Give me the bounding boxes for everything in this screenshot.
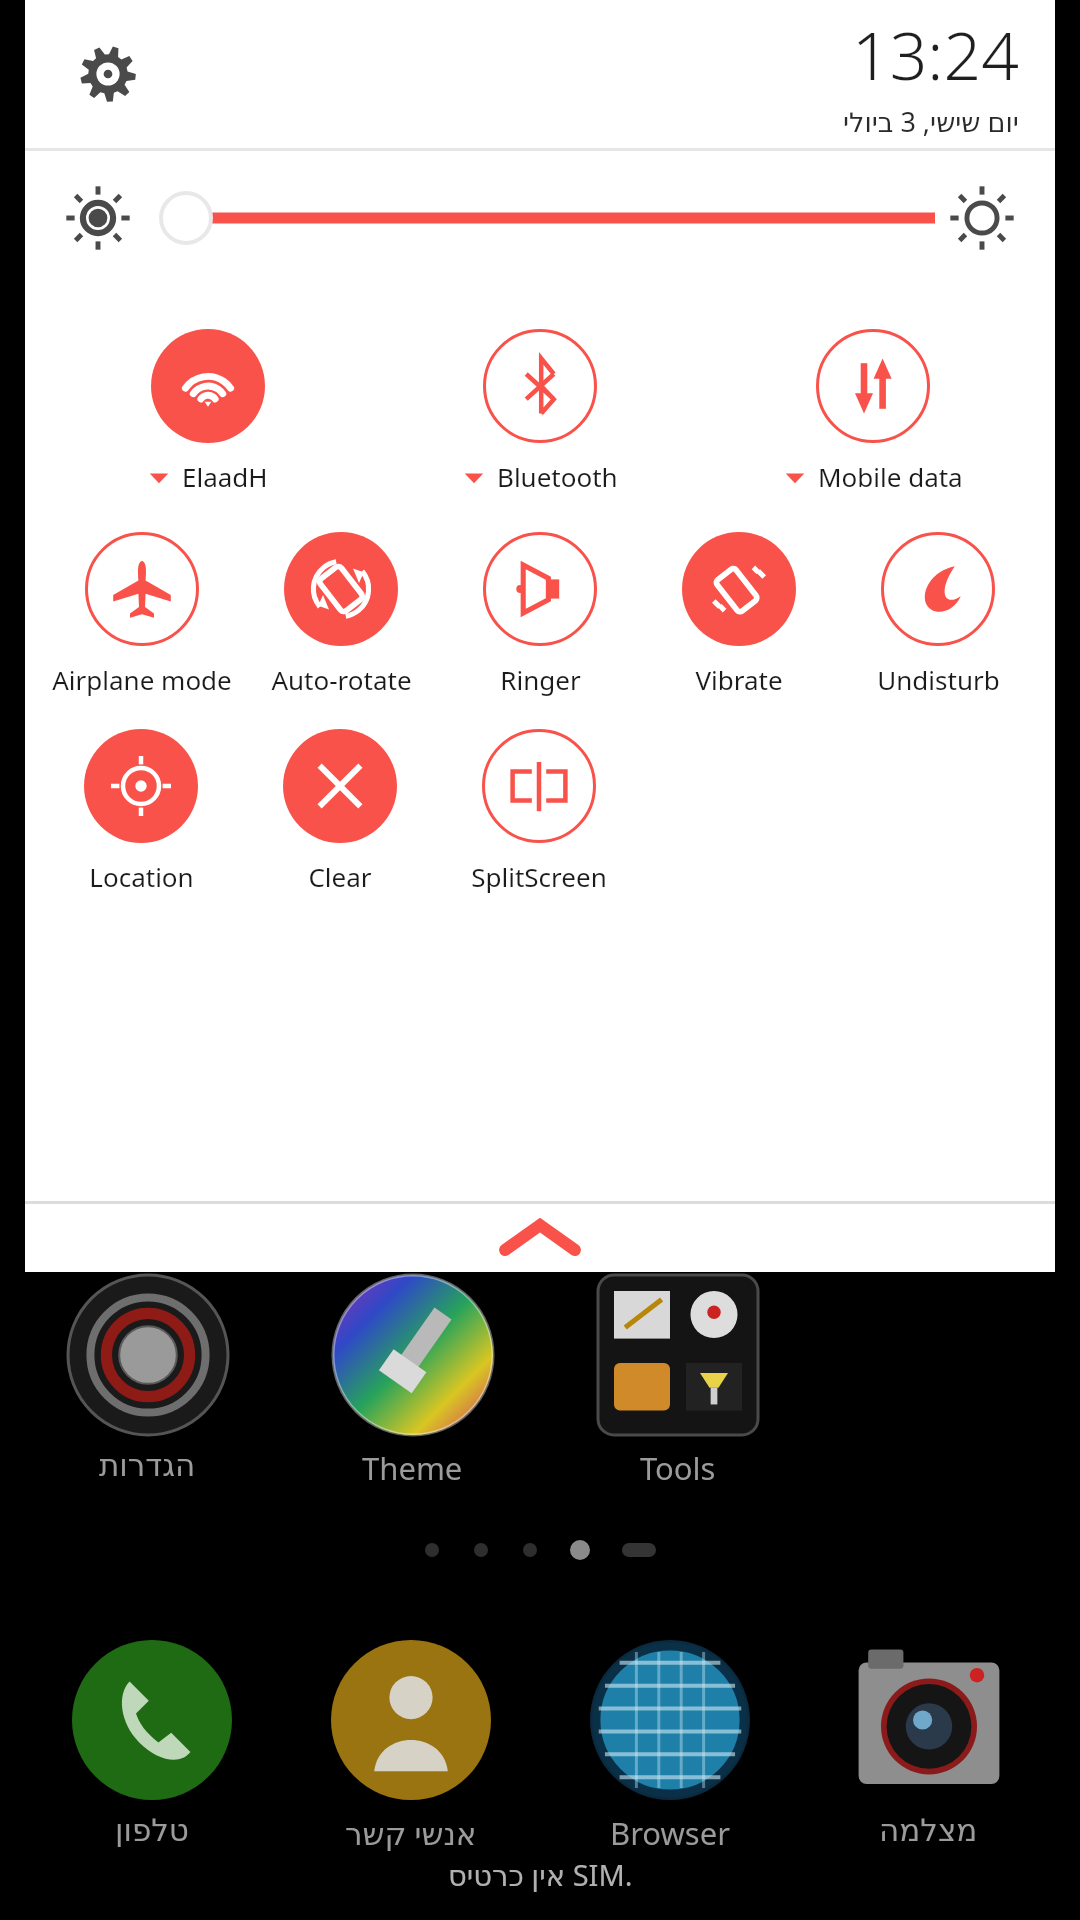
staticText: Mobile data [818, 459, 963, 494]
staticText: SplitScreen [471, 859, 607, 894]
staticText: Clear [308, 859, 372, 894]
button[interactable]: Auto-rotate [243, 532, 439, 697]
button[interactable] [143, 183, 937, 253]
button[interactable]: Tools [570, 1275, 785, 1489]
button[interactable]: מצלמה [821, 1640, 1036, 1848]
staticText: Undisturb [877, 662, 1000, 697]
button[interactable]: Browser [562, 1640, 777, 1854]
button[interactable]: Settings [63, 29, 153, 119]
button[interactable]: Ringer [442, 532, 638, 697]
staticText: Airplane mode [52, 662, 232, 697]
staticText: Theme [362, 1447, 463, 1489]
button[interactable]: הגדרות [40, 1275, 255, 1483]
staticText: מצלמה [879, 1812, 978, 1848]
button[interactable]: Theme [305, 1275, 520, 1489]
staticText: הגדרות [99, 1447, 196, 1483]
staticText: Auto-rotate [271, 662, 412, 697]
button[interactable]: Airplane mode [44, 532, 240, 697]
staticText: Browser [610, 1812, 730, 1854]
button[interactable]: ElaadH [58, 329, 358, 494]
button[interactable]: Vibrate [641, 532, 837, 697]
staticText: Ringer [500, 662, 581, 697]
button[interactable]: אנשי קשר [303, 1640, 518, 1854]
button[interactable]: Bluetooth [390, 329, 690, 494]
button[interactable]: Clear [242, 729, 438, 894]
button[interactable]: SplitScreen [441, 729, 637, 894]
staticText: טלפון [115, 1812, 189, 1848]
staticText: Tools [640, 1447, 716, 1489]
staticText: יום שישי, 3 ביולי [843, 103, 1019, 140]
button[interactable]: Location [43, 729, 239, 894]
staticText: Vibrate [695, 662, 783, 697]
staticText: אנשי קשר [345, 1812, 477, 1854]
staticText: 13:24 [852, 9, 1019, 99]
staticText: אין כרטיס SIM. [448, 1855, 633, 1894]
button[interactable]: טלפון [44, 1640, 259, 1848]
staticText: ElaadH [182, 459, 268, 494]
button[interactable]: Mobile data [723, 329, 1023, 494]
staticText: Bluetooth [497, 459, 618, 494]
button[interactable]: Undisturb [840, 532, 1036, 697]
button[interactable]: Collapse [25, 1204, 1055, 1272]
staticText: Location [89, 859, 194, 894]
